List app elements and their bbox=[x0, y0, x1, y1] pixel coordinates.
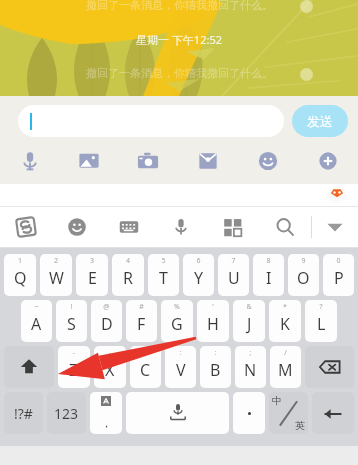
staticText: % bbox=[161, 302, 193, 312]
staticText: K bbox=[280, 313, 290, 335]
staticText: 星期一 下午12:52 bbox=[136, 32, 222, 47]
button[interactable]: Red packet bbox=[178, 140, 238, 182]
staticText: 9 bbox=[288, 256, 319, 266]
button[interactable]: Shift bbox=[4, 346, 54, 388]
staticText: ? bbox=[305, 302, 337, 312]
button[interactable]: # bbox=[126, 300, 157, 342]
button[interactable]: ; bbox=[235, 346, 266, 388]
staticText: L bbox=[317, 313, 326, 335]
staticText: 7 bbox=[218, 256, 249, 266]
button[interactable]: Backspace bbox=[305, 346, 354, 388]
button[interactable]: - bbox=[130, 346, 161, 388]
button[interactable]: 发送 bbox=[292, 105, 348, 137]
button[interactable]: ? bbox=[305, 300, 337, 342]
staticText: H bbox=[207, 313, 219, 335]
button[interactable]: 9 bbox=[288, 254, 319, 296]
button[interactable]: Sogou badge bbox=[328, 186, 346, 204]
button[interactable]: 2 bbox=[40, 254, 72, 296]
button[interactable]: 0 bbox=[323, 254, 354, 296]
button[interactable]: 8 bbox=[253, 254, 284, 296]
staticText: 8 bbox=[253, 256, 284, 266]
button[interactable]: @ bbox=[91, 300, 122, 342]
staticText: Z bbox=[69, 359, 79, 381]
staticText: A bbox=[31, 313, 42, 335]
staticText: T bbox=[159, 267, 168, 289]
button[interactable]: Keyboard layout bbox=[103, 207, 155, 247]
staticText: 123 bbox=[54, 404, 79, 423]
button[interactable]: Sogou bbox=[0, 207, 51, 247]
button[interactable]: - bbox=[94, 346, 126, 388]
button[interactable]: Space bbox=[126, 392, 229, 434]
button[interactable]: % bbox=[161, 300, 193, 342]
staticText: F bbox=[137, 313, 146, 335]
button[interactable] bbox=[18, 105, 284, 137]
staticText: ， bbox=[101, 416, 112, 430]
staticText: 2 bbox=[40, 256, 72, 266]
button[interactable]: Enter bbox=[312, 392, 354, 434]
staticText: Q bbox=[14, 267, 27, 289]
staticText: 1 bbox=[4, 256, 36, 266]
staticText: 撤回了一条消息，你猜我撤回了什么。 bbox=[86, 0, 273, 12]
button[interactable]: 123 bbox=[47, 392, 86, 434]
button[interactable]: ~ bbox=[21, 300, 52, 342]
staticText: 撤回了一条消息，你猜我撤回了什么。 bbox=[86, 66, 273, 80]
button[interactable]: Comma and symbols bbox=[90, 392, 122, 434]
staticText: X bbox=[105, 359, 115, 381]
button[interactable]: & bbox=[233, 300, 265, 342]
staticText: R bbox=[123, 267, 133, 289]
button[interactable]: !?# bbox=[4, 392, 43, 434]
button[interactable]: Period bbox=[233, 392, 265, 434]
staticText: ~ bbox=[21, 302, 52, 312]
button[interactable]: Panel bbox=[207, 207, 259, 247]
button[interactable]: More bbox=[298, 140, 358, 182]
staticText: ; bbox=[235, 348, 266, 358]
button[interactable]: 6 bbox=[183, 254, 214, 296]
staticText: S bbox=[67, 313, 76, 335]
staticText: ! bbox=[56, 302, 87, 312]
button[interactable]: Camera bbox=[118, 140, 178, 182]
button[interactable]: Chinese English toggle bbox=[269, 392, 308, 434]
button[interactable]: : bbox=[165, 346, 196, 388]
staticText: 3 bbox=[76, 256, 108, 266]
staticText: C bbox=[140, 359, 151, 381]
button[interactable]: - bbox=[58, 346, 90, 388]
staticText: @ bbox=[91, 302, 122, 312]
button[interactable]: 4 bbox=[112, 254, 144, 296]
staticText: # bbox=[126, 302, 157, 312]
button[interactable]: Voice message bbox=[0, 140, 59, 182]
button[interactable]: : bbox=[200, 346, 231, 388]
staticText: 4 bbox=[112, 256, 144, 266]
staticText: J bbox=[247, 313, 252, 335]
staticText: E bbox=[88, 267, 97, 289]
button[interactable]: Hide keyboard bbox=[312, 207, 358, 247]
button[interactable]: Emoji bbox=[51, 207, 103, 247]
staticText: D bbox=[101, 313, 113, 335]
button[interactable]: Voice input bbox=[155, 207, 207, 247]
button[interactable]: * bbox=[269, 300, 301, 342]
button[interactable]: 7 bbox=[218, 254, 249, 296]
staticText: 发送 bbox=[307, 113, 333, 129]
button[interactable]: Photo bbox=[59, 140, 118, 182]
button[interactable]: ! bbox=[56, 300, 87, 342]
staticText: 5 bbox=[148, 256, 179, 266]
staticText: * bbox=[269, 302, 301, 312]
staticText: P bbox=[334, 267, 344, 289]
staticText: !?# bbox=[14, 404, 33, 423]
staticText: : bbox=[165, 348, 196, 358]
staticText: V bbox=[176, 359, 186, 381]
button[interactable]: / bbox=[270, 346, 301, 388]
button[interactable]: Search bbox=[259, 207, 311, 247]
button[interactable]: ' bbox=[197, 300, 229, 342]
button[interactable]: 1 bbox=[4, 254, 36, 296]
button[interactable]: 5 bbox=[148, 254, 179, 296]
staticText: - bbox=[58, 348, 90, 358]
staticText: Y bbox=[194, 267, 204, 289]
staticText: 中 bbox=[272, 394, 282, 407]
button[interactable]: Emoji bbox=[238, 140, 298, 182]
staticText: 0 bbox=[323, 256, 354, 266]
staticText: O bbox=[297, 267, 310, 289]
staticText: : bbox=[200, 348, 231, 358]
staticText: I bbox=[266, 267, 272, 289]
staticText: ' bbox=[197, 302, 229, 312]
button[interactable]: 3 bbox=[76, 254, 108, 296]
